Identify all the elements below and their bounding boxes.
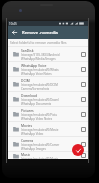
button[interactable]: Pictures [8,106,88,121]
staticText: DCIM [21,78,30,82]
staticText: /storage/emulated/0/Whats [21,68,59,72]
staticText: Remove .nomedia [22,30,59,36]
staticText: 10:45 [9,22,17,26]
staticText: WhatsApp Voice [21,63,47,67]
staticText: /storage/emulated/0/Movie [21,128,59,132]
staticText: Music [21,152,31,156]
staticText: WhatsApp Documents [21,102,52,106]
staticText: Pictures [21,108,34,112]
button[interactable]: Camera [8,136,88,151]
staticText: Select folder(s) to remove .nomedia file… [10,41,67,45]
button[interactable]: Download [8,91,88,106]
staticText: WhatsApp Video [21,132,44,136]
staticText: /storage/emulated/0/Music [21,157,59,159]
staticText: Camera/Screenshots [21,87,50,91]
staticText: /storage/emulated/0/Downl [21,98,59,102]
staticText: Camera [21,138,34,142]
staticText: /storage/emulated/0/Pictu [21,113,57,117]
staticText: WhatsApp Voice Notes [21,72,52,76]
button[interactable]: Movies [8,121,88,136]
staticText: WhatsApp Video Notes [21,117,53,121]
staticText: WhatsApp Images [21,147,46,151]
staticText: /storage/emulated/0/Camer [21,143,60,147]
button[interactable]: Back [8,26,21,39]
staticText: /storage/3135-3833/Android [21,53,60,57]
button[interactable]: Music [8,151,88,159]
staticText: WhatsApp/Media/Images [21,57,56,61]
button[interactable]: DCIM [8,76,88,91]
staticText: SanDisk [21,48,34,52]
staticText: Download [21,93,37,97]
button[interactable]: SanDisk [8,46,88,61]
staticText: Movies [21,123,33,127]
button[interactable]: WhatsApp Voice [8,61,88,76]
button[interactable]: Confirm selection [72,144,84,156]
staticText: /storage/emulated/0/DCIM [21,83,58,87]
